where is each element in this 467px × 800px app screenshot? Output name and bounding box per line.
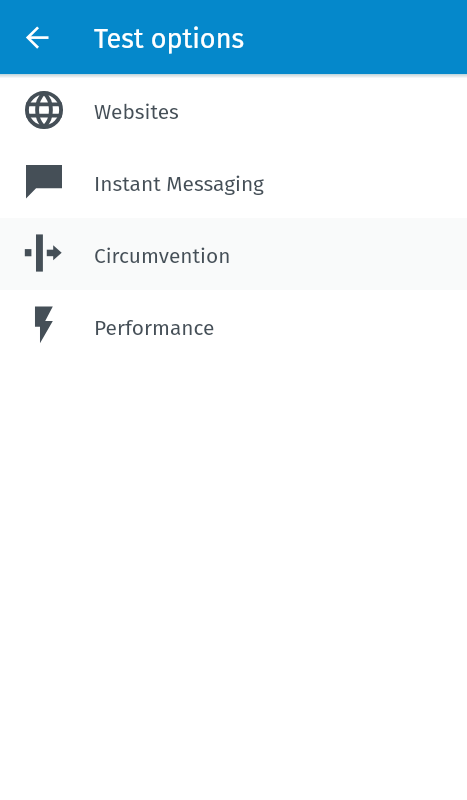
staticText: Instant Messaging: [94, 171, 264, 196]
staticText: Circumvention: [94, 243, 231, 268]
staticText: Performance: [94, 315, 215, 340]
staticText: Test options: [94, 23, 245, 55]
button[interactable]: Instant Messaging: [0, 146, 467, 218]
staticText: Websites: [94, 99, 179, 124]
button[interactable]: Circumvention: [0, 218, 467, 290]
button[interactable]: Websites: [0, 74, 467, 146]
button[interactable]: Performance: [0, 290, 467, 362]
button[interactable]: Back: [0, 0, 74, 74]
